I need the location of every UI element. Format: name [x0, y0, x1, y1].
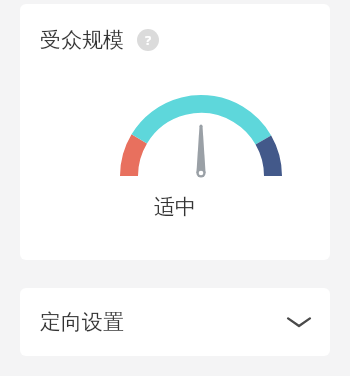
- button[interactable]: 受众规模: [20, 4, 330, 260]
- staticText: 受众规模: [40, 27, 124, 53]
- staticText: 定向设置: [40, 309, 124, 335]
- staticText: ?: [145, 31, 152, 49]
- other: Expand: [286, 313, 312, 331]
- button[interactable]: Help: [137, 29, 159, 51]
- button[interactable]: 定向设置: [20, 288, 330, 356]
- staticText: 适中: [154, 194, 196, 220]
